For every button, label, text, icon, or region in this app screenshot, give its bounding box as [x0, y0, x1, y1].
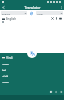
- staticText: हैलो: [2, 69, 6, 71]
- button[interactable]: Clear: [51, 17, 54, 20]
- button[interactable]: English: [1, 11, 27, 15]
- button[interactable]: Copy: [49, 90, 52, 93]
- button[interactable]: अंग्रेज़ी: [2, 75, 50, 77]
- button[interactable]: हैलो: [2, 69, 35, 71]
- button[interactable]: अनुवाद: [2, 63, 59, 65]
- button[interactable]: Swap languages: [27, 10, 36, 16]
- staticText: अनुवाद: [2, 63, 9, 65]
- staticText: अनुवाद: [2, 81, 9, 83]
- button[interactable]: Voice input: [55, 17, 58, 20]
- button[interactable]: Share: [54, 90, 57, 93]
- button[interactable]: अनुवाद: [2, 81, 56, 83]
- button[interactable]: Hindi: [36, 11, 63, 15]
- staticText: अंग्रेज़ी: [2, 75, 9, 77]
- button[interactable]: Back: [0, 4, 6, 10]
- staticText: Hindi: [37, 12, 43, 15]
- staticText: English: [2, 12, 11, 15]
- button[interactable]: Listen: [59, 90, 62, 93]
- button[interactable]: Translate: [27, 48, 37, 58]
- staticText: Translator: [24, 5, 41, 9]
- staticText: English: [6, 17, 16, 21]
- button[interactable]: Camera input: [59, 17, 62, 20]
- staticText: Hindi: [6, 56, 14, 60]
- button[interactable]: More options: [58, 4, 64, 10]
